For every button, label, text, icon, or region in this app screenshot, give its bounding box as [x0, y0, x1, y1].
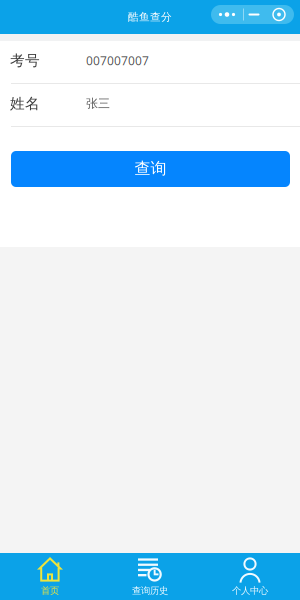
button[interactable]: 姓名 [0, 84, 300, 126]
staticText: 姓名 [10, 94, 40, 112]
staticText: 查询 [134, 159, 166, 178]
button[interactable]: 查询 [11, 151, 290, 187]
button[interactable]: 考号 [0, 41, 300, 83]
button[interactable]: 个人中心 [200, 553, 300, 600]
staticText: 首页 [41, 585, 59, 596]
button[interactable]: More [211, 5, 243, 24]
staticText: 个人中心 [232, 585, 268, 596]
button[interactable]: Minimise [244, 5, 264, 24]
button[interactable]: 查询历史 [100, 553, 200, 600]
staticText: 查询历史 [132, 585, 168, 596]
button[interactable]: 首页 [0, 553, 100, 600]
button[interactable]: Close [264, 5, 294, 24]
staticText: 酷鱼查分 [128, 10, 172, 23]
staticText: 考号 [10, 51, 40, 69]
staticText: 007007007 [86, 52, 149, 68]
staticText: 张三 [86, 96, 110, 111]
